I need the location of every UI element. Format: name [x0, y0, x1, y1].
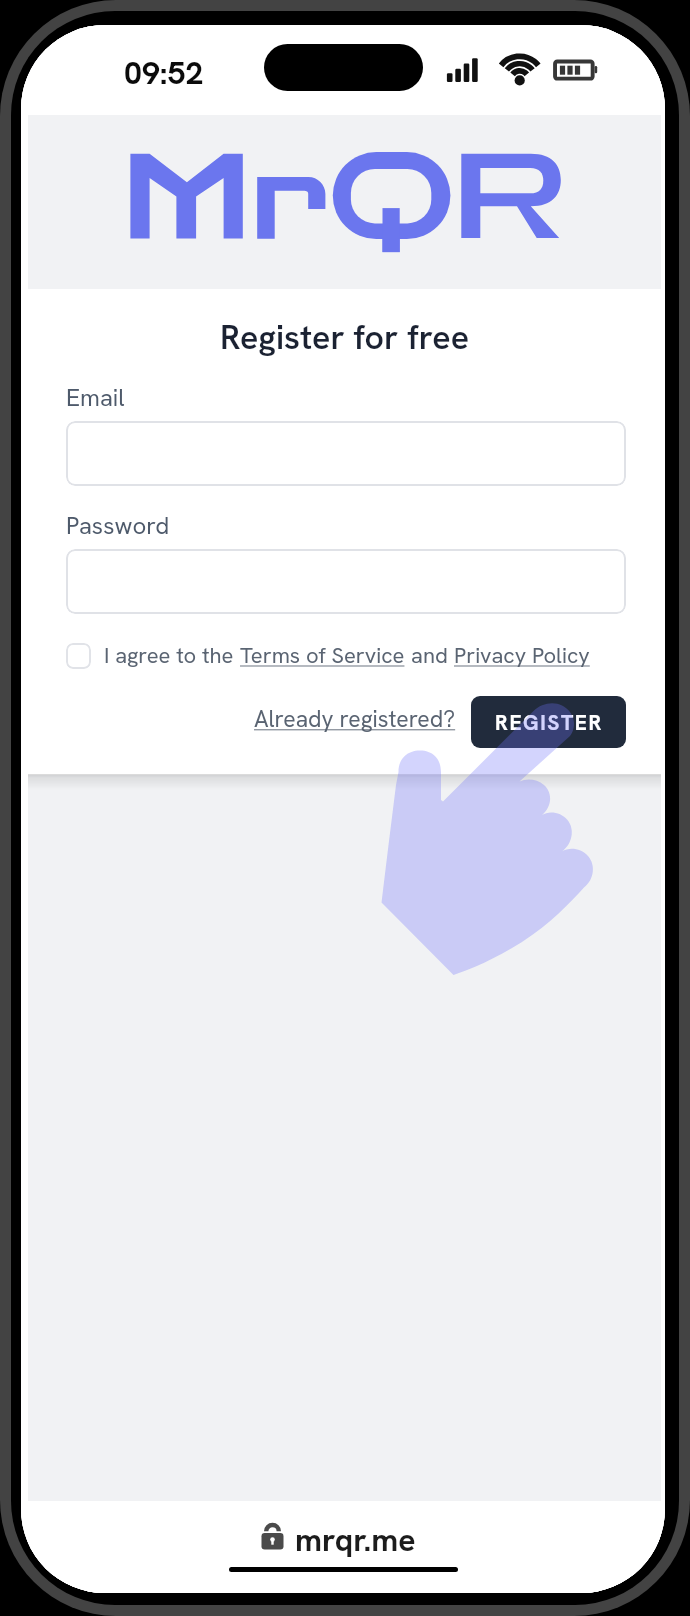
staticText: REGISTER [495, 709, 603, 736]
staticText: I agree to the [104, 641, 234, 670]
staticText: Privacy Policy [454, 641, 590, 670]
button[interactable]: Terms of Service [240, 641, 405, 670]
button[interactable]: Privacy Policy [454, 641, 590, 670]
staticText: mrqr.me [295, 1519, 416, 1561]
button[interactable]: REGISTER [471, 696, 626, 748]
staticText: 09:52 [124, 52, 204, 94]
staticText: and [411, 641, 448, 670]
button[interactable] [66, 421, 626, 486]
staticText: Register for free [220, 315, 470, 359]
button[interactable]: Already registered? [254, 704, 456, 734]
staticText: Terms of Service [240, 641, 405, 670]
button[interactable]: Agree to terms [66, 643, 91, 669]
button[interactable] [66, 549, 626, 614]
staticText: Already registered? [254, 704, 456, 734]
staticText: Password [66, 510, 170, 541]
staticText: Email [66, 382, 125, 413]
